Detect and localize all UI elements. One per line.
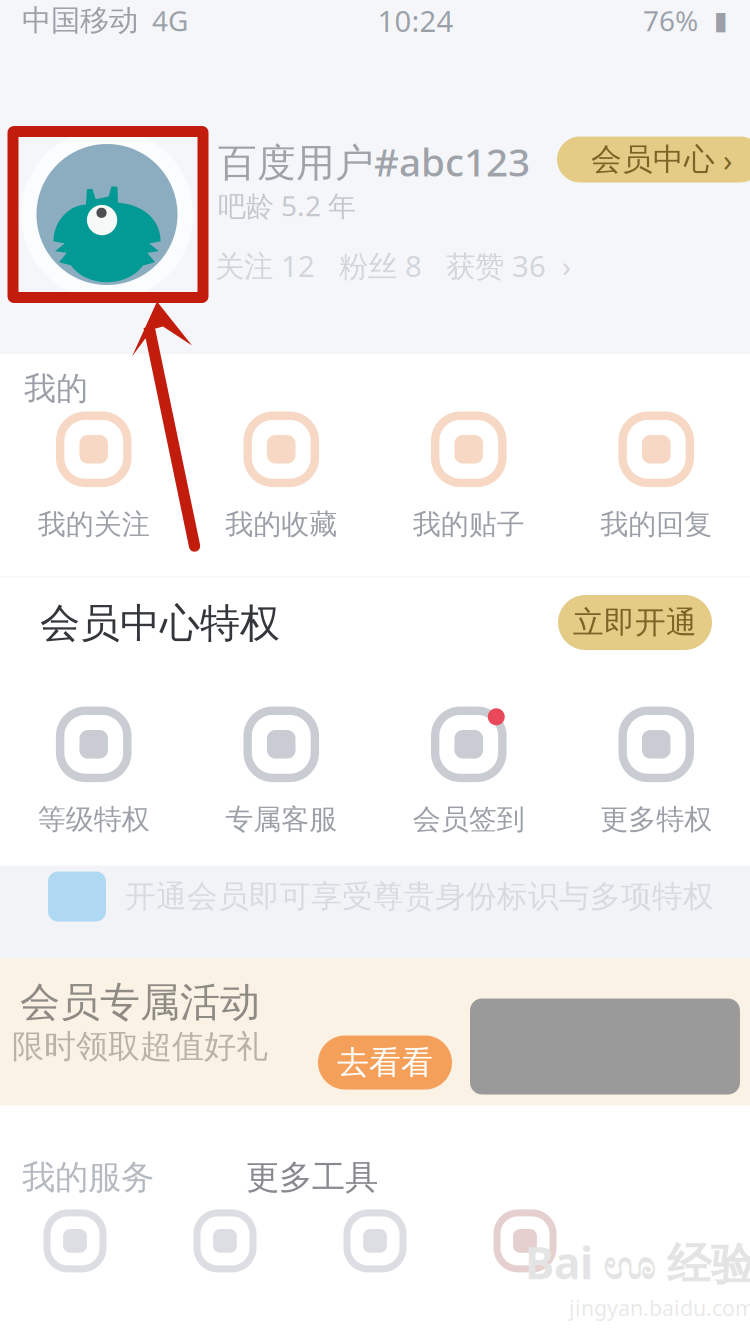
staticText: 开通会员即可享受尊贵身份标识与多项特权 xyxy=(125,878,714,915)
button[interactable]: 更多特权 xyxy=(562,702,750,837)
staticText: 等级特权 xyxy=(38,802,150,837)
staticText: 更多工具 xyxy=(246,1157,378,1198)
staticText: › xyxy=(723,139,733,180)
staticText: 百度用户#abc123 xyxy=(218,136,530,187)
staticText: 限时领取超值好礼 xyxy=(12,1027,268,1066)
button[interactable]: 我的关注 xyxy=(0,407,187,542)
staticText: 会员签到 xyxy=(413,802,525,837)
staticText: jingyan.baidu.com xyxy=(569,1294,750,1322)
button[interactable] xyxy=(0,1206,150,1329)
staticText: 去看看 xyxy=(337,1043,433,1082)
staticText: 专属客服 xyxy=(225,802,337,837)
staticText: 中国移动 xyxy=(22,2,138,38)
button[interactable] xyxy=(300,1206,450,1329)
button[interactable]: 会员签到 xyxy=(375,702,562,837)
staticText: Bai ಊ 经验 xyxy=(525,1233,750,1292)
staticText: 立即开通 xyxy=(573,604,697,641)
button[interactable]: 等级特权 xyxy=(0,702,187,837)
staticText: 关注 12 粉丝 8 获赞 36 › xyxy=(215,246,571,285)
button[interactable]: 我的回复 xyxy=(562,407,750,542)
staticText: 4G xyxy=(138,2,188,39)
staticText: 10:24 xyxy=(377,1,453,40)
button[interactable]: 会员专属活动 xyxy=(0,958,750,1105)
button[interactable] xyxy=(150,1206,300,1329)
button[interactable]: 专属客服 xyxy=(187,702,375,837)
staticText: 我的关注 xyxy=(38,507,150,542)
button[interactable]: 会员中心 xyxy=(557,136,750,182)
staticText: 我的服务 xyxy=(22,1157,154,1198)
staticText: ▮ xyxy=(698,6,728,35)
staticText: 吧龄 5.2 年 xyxy=(218,187,356,224)
button[interactable]: 开通会员即可享受尊贵身份标识与多项特权 xyxy=(0,865,750,958)
button[interactable] xyxy=(450,1206,600,1329)
staticText: 会员专属活动 xyxy=(20,978,260,1027)
staticText: 76% xyxy=(643,2,698,39)
staticText: 我的收藏 xyxy=(225,507,337,542)
staticText: 我的回复 xyxy=(600,507,712,542)
staticText: 我的 xyxy=(24,369,88,408)
button[interactable]: 立即开通 xyxy=(558,595,712,650)
staticText: 我的贴子 xyxy=(413,507,525,542)
staticText: 会员中心 xyxy=(591,141,715,178)
button[interactable]: 我的贴子 xyxy=(375,407,562,542)
button[interactable]: 我的收藏 xyxy=(187,407,375,542)
staticText: 更多特权 xyxy=(600,802,712,837)
staticText: 会员中心特权 xyxy=(40,599,280,648)
